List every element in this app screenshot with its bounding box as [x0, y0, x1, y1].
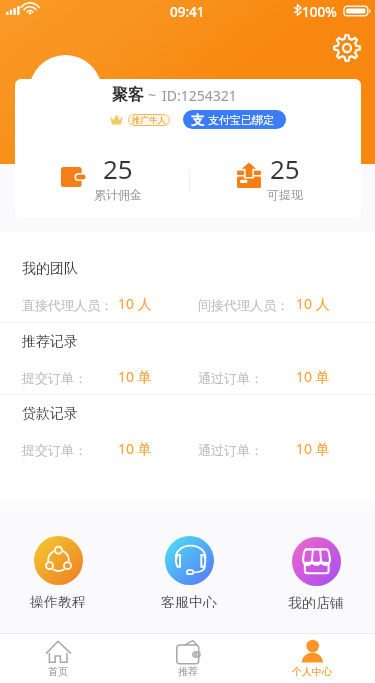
- staticText: 10 人: [296, 294, 330, 313]
- button[interactable]: 我的店铺: [271, 533, 361, 609]
- button[interactable]: 支: [183, 110, 286, 129]
- staticText: 10 单: [118, 439, 152, 458]
- staticText: 我的店铺: [288, 595, 344, 609]
- button[interactable]: 客服中心: [144, 532, 234, 608]
- staticText: 首页: [48, 665, 68, 678]
- staticText: 推荐记录: [22, 333, 78, 351]
- staticText: 25: [103, 151, 133, 186]
- staticText: 可提现: [267, 187, 303, 202]
- staticText: 贷款记录: [22, 405, 78, 423]
- staticText: 10 单: [296, 367, 330, 386]
- staticText: 我的团队: [22, 260, 78, 278]
- staticText: 间接代理人员：: [198, 297, 289, 313]
- button[interactable]: Avatar: [29, 55, 102, 128]
- button[interactable]: 个人中心: [262, 634, 362, 683]
- staticText: 10 单: [296, 439, 330, 458]
- staticText: 个人中心: [292, 665, 332, 678]
- staticText: 通过订单：: [198, 442, 263, 458]
- button[interactable]: 操作教程: [13, 532, 103, 608]
- staticText: ID:1254321: [162, 86, 237, 105]
- staticText: 推荐: [178, 665, 198, 678]
- staticText: 直接代理人员：: [22, 297, 113, 313]
- staticText: 09:41: [170, 3, 205, 21]
- button[interactable]: 首页: [8, 634, 108, 683]
- staticText: 10 人: [118, 294, 152, 313]
- staticText: 25: [270, 151, 300, 186]
- staticText: 累计佣金: [94, 187, 142, 202]
- button[interactable]: Settings: [332, 33, 362, 63]
- staticText: 提交订单：: [22, 442, 87, 458]
- staticText: 客服中心: [161, 594, 217, 608]
- staticText: 支付宝已绑定: [208, 113, 274, 127]
- staticText: 推广牛人: [132, 115, 166, 126]
- staticText: 100%: [302, 3, 337, 21]
- button[interactable]: 推荐: [138, 634, 238, 683]
- staticText: 聚客: [112, 85, 144, 105]
- staticText: ~: [148, 85, 157, 104]
- staticText: 通过订单：: [198, 370, 263, 386]
- staticText: 操作教程: [30, 594, 86, 608]
- staticText: 支: [191, 112, 204, 128]
- staticText: 提交订单：: [22, 370, 87, 386]
- staticText: 10 单: [118, 367, 152, 386]
